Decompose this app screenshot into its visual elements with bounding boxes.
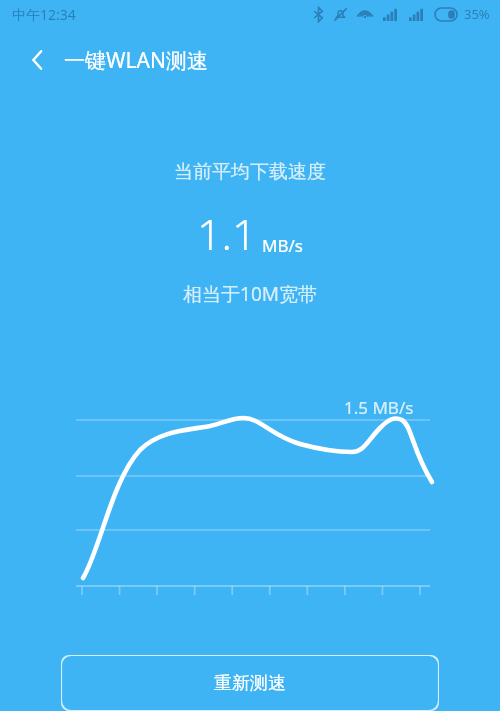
staticText: 1.5 MB/s (344, 396, 414, 419)
staticText: 重新测速 (214, 672, 286, 695)
staticText: 35% (464, 5, 490, 23)
button[interactable]: Back (20, 43, 54, 77)
staticText: 中午12:34 (12, 5, 76, 24)
button[interactable]: 重新测速 (61, 655, 439, 711)
staticText: 相当于10M宽带 (183, 281, 317, 307)
staticText: 1.1 (197, 204, 257, 263)
staticText: MB/s (262, 234, 303, 257)
staticText: 当前平均下载速度 (174, 160, 326, 184)
staticText: 一键WLAN测速 (64, 46, 208, 75)
